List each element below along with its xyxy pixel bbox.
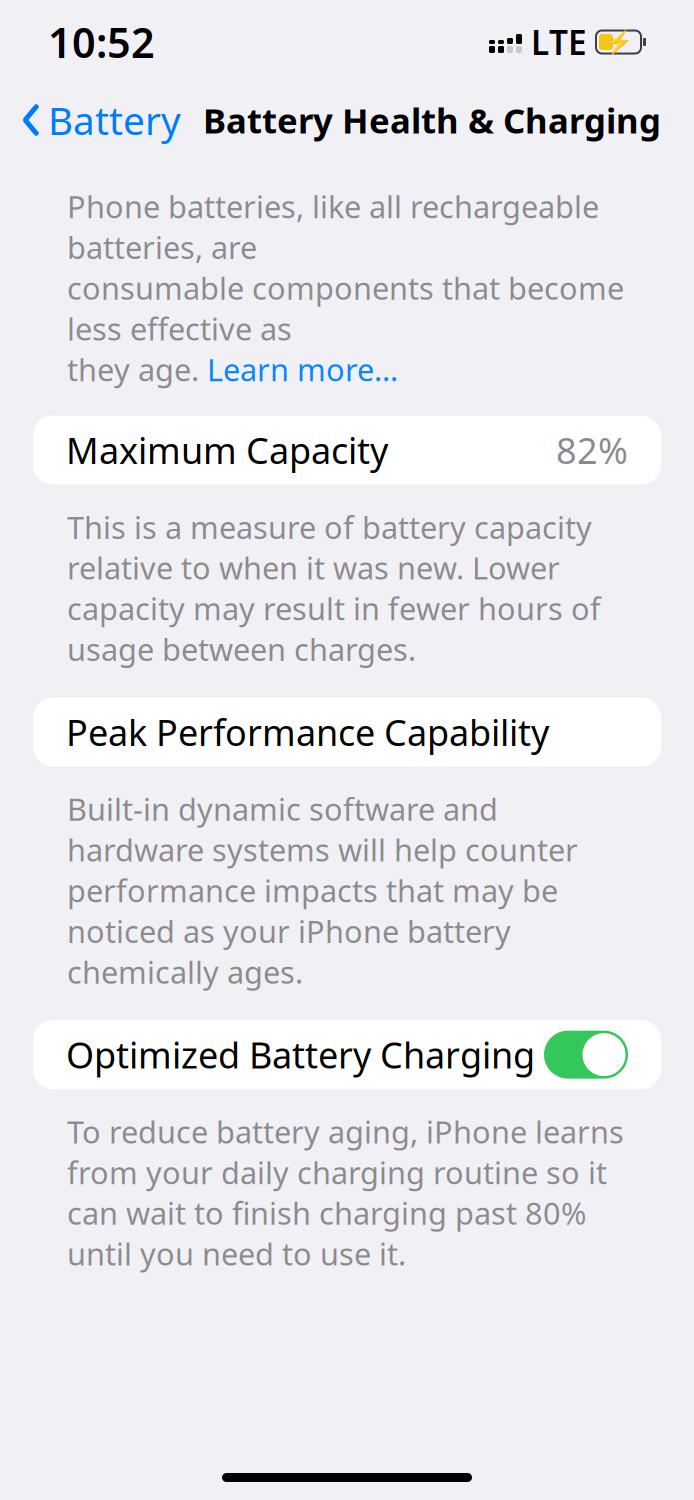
button[interactable]: Peak Performance Capability	[33, 697, 661, 766]
staticText: 82%	[556, 426, 628, 474]
staticText: To reduce battery aging, iPhone learns f…	[67, 1111, 624, 1274]
staticText: Learn more...	[207, 349, 398, 390]
button[interactable]: Maximum Capacity	[33, 416, 661, 485]
button[interactable]: Battery	[22, 86, 181, 154]
staticText: Battery	[48, 94, 181, 146]
staticText: This is a measure of battery capacity re…	[67, 507, 601, 669]
staticText: Battery Health & Charging	[203, 97, 661, 143]
button[interactable]: Optimized Battery Charging	[33, 1020, 661, 1089]
staticText: Phone batteries, like all rechargeable b…	[67, 186, 599, 267]
staticText: 10:52	[48, 15, 155, 69]
staticText: Maximum Capacity	[66, 426, 388, 474]
staticText: Built-in dynamic software and hardware s…	[67, 788, 578, 992]
staticText: Peak Performance Capability	[66, 708, 549, 756]
staticText: they age.	[67, 349, 207, 390]
staticText: consumable components that become less e…	[67, 267, 624, 349]
staticText: ⚡	[604, 29, 632, 55]
staticText: Optimized Battery Charging	[66, 1031, 535, 1078]
staticText: LTE	[531, 20, 587, 64]
button[interactable]: Learn more...	[207, 349, 398, 390]
